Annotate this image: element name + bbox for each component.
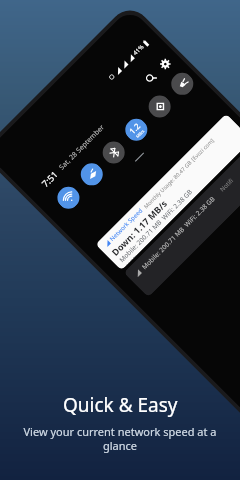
staticText: Down: 1.17 MB/s — [109, 197, 169, 258]
staticText: (Wifi) — [124, 253, 137, 266]
staticText: 7:51 — [39, 168, 60, 189]
button[interactable]: Network Speed — [95, 114, 240, 271]
button[interactable]: Quick setting — [98, 137, 129, 168]
button[interactable]: Search — [143, 70, 160, 87]
staticText: Sat, 28 September — [57, 122, 107, 172]
staticText: View your current network speed at a gla… — [20, 424, 220, 453]
staticText: Mobile: 200.71 MB WiFi: 2.38 GB — [117, 187, 194, 264]
staticText: Notifi — [218, 176, 235, 193]
button[interactable]: Quick setting — [53, 182, 84, 213]
button[interactable]: Quick setting — [121, 114, 152, 145]
button[interactable]: Quick setting — [144, 91, 175, 122]
button[interactable]: Mobile: 200.71 MB WiFi: 2.38 GB — [124, 142, 240, 297]
staticText: MB/s — [135, 128, 145, 139]
staticText: 1.2 — [126, 120, 143, 136]
staticText: Quick & Easy — [63, 392, 178, 418]
button[interactable]: Settings — [157, 56, 174, 73]
staticText: Monthly Usage: 80.47 GB — [142, 159, 193, 210]
staticText: Network Speed — [108, 206, 145, 243]
staticText: Mobile: 200.71 MB WiFi: 2.38 GB — [140, 194, 217, 271]
staticText: [Evozi com] — [189, 136, 215, 162]
button[interactable]: Quick setting — [76, 159, 107, 190]
staticText: 41% — [131, 43, 145, 57]
button[interactable]: Quick setting — [167, 68, 198, 99]
